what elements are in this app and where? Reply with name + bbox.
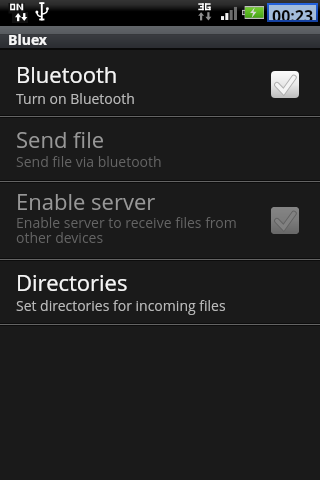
staticText: Bluex	[8, 30, 47, 49]
staticText: Turn on Bluetooth	[16, 89, 135, 108]
staticText: 00:23	[272, 5, 314, 20]
staticText: Set directories for incoming files	[16, 296, 226, 315]
staticText: Send file	[16, 124, 105, 154]
button[interactable]: Bluetooth	[0, 50, 320, 116]
staticText: Enable server	[16, 186, 156, 216]
button[interactable]: Directories	[0, 259, 320, 324]
staticText: Bluetooth	[16, 59, 118, 89]
button[interactable]: Send file	[0, 117, 320, 181]
staticText: Enable server to receive files from othe…	[16, 213, 237, 247]
staticText: Directories	[16, 267, 128, 297]
button[interactable]: Enable server	[0, 181, 320, 259]
staticText: Send file via bluetooth	[16, 152, 162, 171]
button[interactable]: Toggle	[271, 71, 299, 98]
button[interactable]: Toggle	[271, 207, 299, 234]
